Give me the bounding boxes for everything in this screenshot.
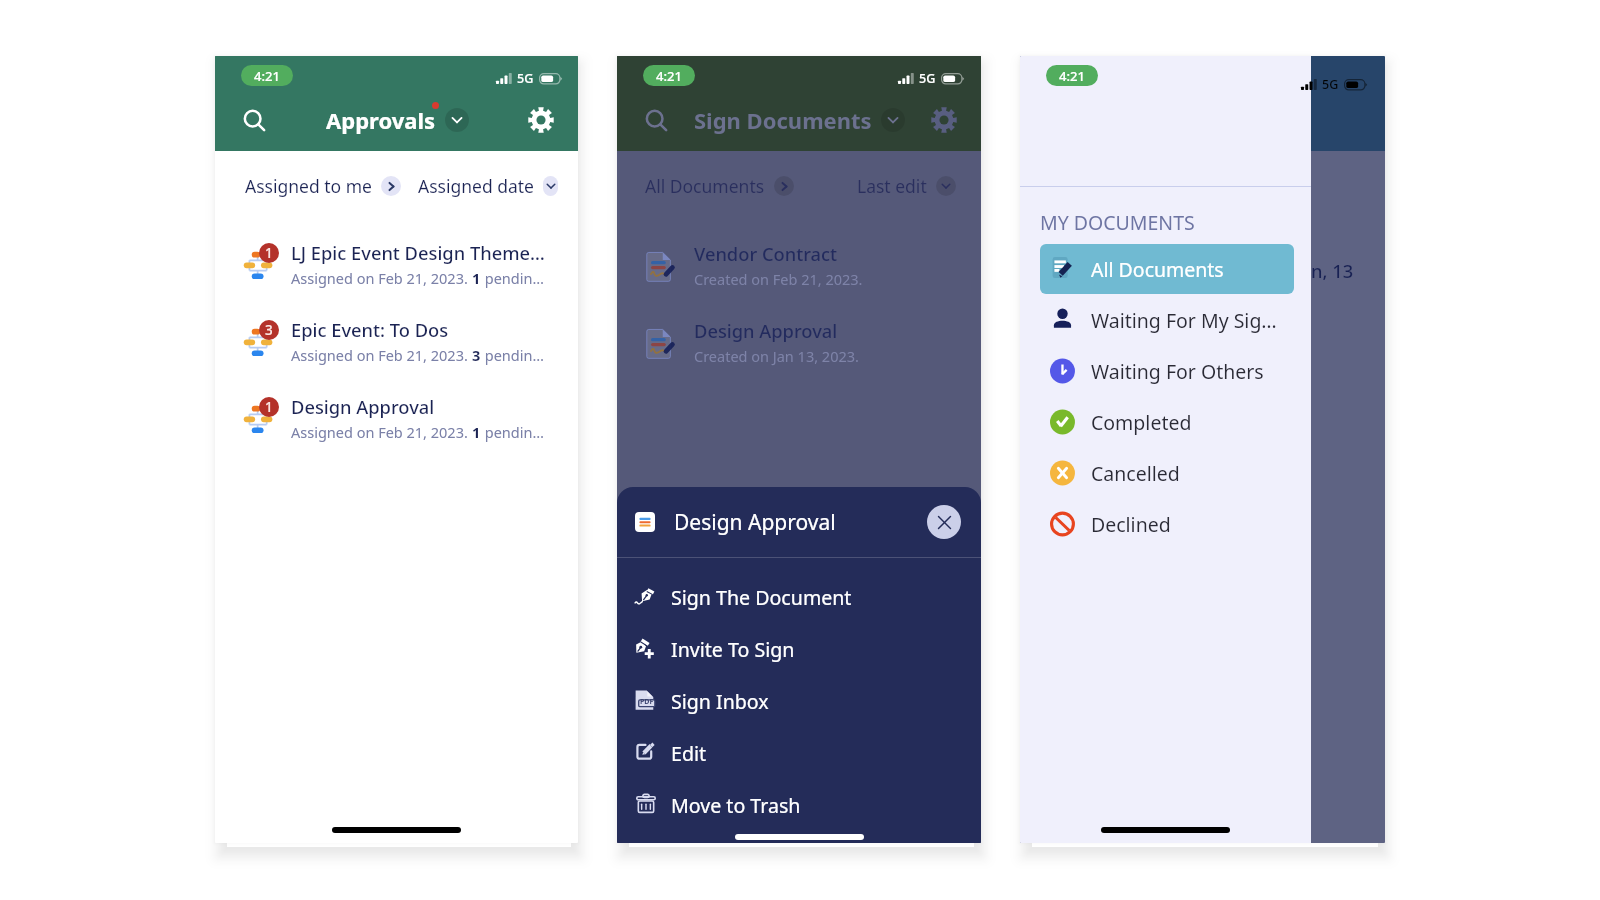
button[interactable]: Approvals — [326, 105, 469, 135]
staticText: Design Approval — [674, 508, 836, 537]
staticText: 1 — [472, 268, 481, 288]
staticText: Waiting For Others — [1091, 358, 1264, 385]
button[interactable]: 3 — [215, 302, 578, 379]
staticText: 1 — [472, 422, 481, 442]
button[interactable]: Waiting For My Sig… — [1040, 295, 1294, 345]
staticText: 1 — [265, 244, 273, 262]
staticText: Design Approval — [291, 394, 435, 419]
staticText: Design Approval — [694, 318, 838, 343]
staticText: Assigned to me — [245, 174, 372, 198]
button[interactable]: Move to Trash — [617, 779, 981, 831]
button[interactable]: Completed — [1040, 397, 1294, 447]
staticText: 5G — [1322, 76, 1339, 93]
button[interactable]: Vendor Contract — [617, 226, 981, 303]
staticText: 5G — [919, 70, 936, 87]
staticText: Assigned on Feb 21, 2023. — [291, 345, 472, 365]
button[interactable]: All Documents — [645, 174, 794, 198]
staticText: All Documents — [1091, 256, 1224, 283]
button[interactable]: 1 — [215, 225, 578, 302]
button[interactable]: 1 — [215, 379, 578, 456]
button[interactable]: Settings — [524, 103, 558, 137]
button[interactable]: Sign Documents — [694, 105, 905, 135]
staticText: Last edit — [857, 174, 927, 198]
staticText: Sign The Document — [671, 584, 852, 611]
staticText: Vendor Contract — [694, 241, 837, 266]
button[interactable]: Search — [639, 103, 673, 137]
staticText: Sign Documents — [694, 105, 872, 135]
staticText: pendin… — [481, 422, 544, 442]
staticText: pendin… — [481, 345, 544, 365]
staticText: 4:21 — [656, 67, 682, 85]
button[interactable]: Search — [237, 103, 271, 137]
staticText: Edit — [671, 740, 707, 767]
staticText: Created on Feb 21, 2023. — [694, 269, 863, 289]
staticText: MY DOCUMENTS — [1040, 209, 1195, 236]
staticText: Sign Inbox — [671, 688, 769, 715]
staticText: Completed — [1091, 409, 1192, 436]
staticText: 4:21 — [254, 67, 280, 85]
button[interactable]: Declined — [1040, 499, 1294, 549]
staticText: PDF — [640, 697, 654, 707]
button[interactable]: Sign The Document — [617, 571, 981, 623]
staticText: Assigned on Feb 21, 2023. — [291, 422, 472, 442]
staticText: Declined — [1091, 511, 1171, 538]
staticText: Approvals — [326, 105, 436, 135]
button[interactable]: Invite To Sign — [617, 623, 981, 675]
staticText: 3 — [472, 345, 481, 365]
staticText: n, 13 — [1311, 258, 1354, 283]
button[interactable]: Close — [927, 505, 961, 539]
staticText: Move to Trash — [671, 792, 801, 819]
staticText: LJ Epic Event Design Theme… — [291, 240, 545, 265]
button[interactable]: Last edit — [857, 174, 956, 198]
button[interactable]: Waiting For Others — [1040, 346, 1294, 396]
button[interactable]: Settings — [927, 103, 961, 137]
staticText: 5G — [517, 70, 534, 87]
staticText: 3 — [265, 321, 273, 339]
staticText: Assigned date — [418, 174, 534, 198]
staticText: Waiting For My Sig… — [1091, 307, 1277, 334]
staticText: Assigned on Feb 21, 2023. — [291, 268, 472, 288]
button[interactable]: Cancelled — [1040, 448, 1294, 498]
button[interactable]: All Documents — [1040, 244, 1294, 294]
staticText: pendin… — [481, 268, 544, 288]
staticText: All Documents — [645, 174, 765, 198]
staticText: 4:21 — [1059, 67, 1085, 85]
button[interactable]: Edit — [617, 727, 981, 779]
staticText: Cancelled — [1091, 460, 1180, 487]
staticText: Epic Event: To Dos — [291, 317, 449, 342]
staticText: Invite To Sign — [671, 636, 795, 663]
staticText: Created on Jan 13, 2023. — [694, 346, 859, 366]
button[interactable]: Design Approval — [617, 303, 981, 380]
staticText: 1 — [265, 398, 273, 416]
button[interactable]: Assigned to me — [245, 174, 401, 198]
button[interactable]: PDF — [617, 675, 981, 727]
button[interactable]: Assigned date — [418, 174, 558, 198]
